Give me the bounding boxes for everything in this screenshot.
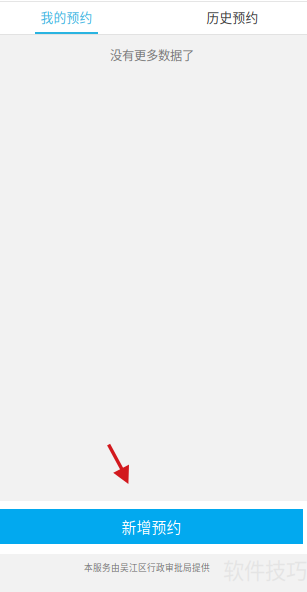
staticText: 没有更多数据了: [110, 46, 194, 64]
staticText: 本服务由吴江区行政审批局提供: [84, 561, 210, 573]
button[interactable]: 新增预约: [0, 509, 303, 544]
staticText: 历史预约: [206, 8, 258, 26]
staticText: 我的预约: [40, 8, 92, 26]
staticText: 新增预约: [121, 516, 181, 537]
button[interactable]: 我的预约: [0, 2, 133, 34]
staticText: 软件技巧: [223, 554, 307, 585]
button[interactable]: 历史预约: [133, 2, 307, 34]
